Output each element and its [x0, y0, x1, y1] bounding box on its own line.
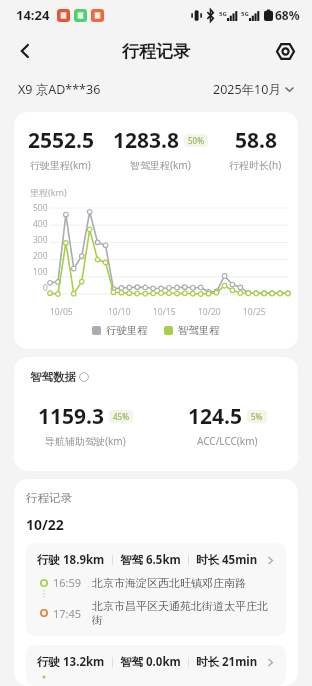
- staticText: 10/25: [243, 306, 266, 318]
- staticText: 行驶 18.9km: [37, 552, 105, 568]
- button[interactable]: X9 京AD***36: [18, 81, 101, 98]
- staticText: 10/10: [108, 306, 131, 318]
- staticText: 124.5: [188, 402, 242, 431]
- staticText: 16:59: [53, 575, 82, 590]
- staticText: 行驶里程(km): [30, 158, 91, 172]
- staticText: X9 京AD***36: [18, 81, 101, 98]
- staticText: 导航辅助驾驶(km): [45, 434, 126, 448]
- staticText: 智驾里程(km): [130, 158, 191, 172]
- staticText: 5%: [251, 411, 263, 422]
- staticText: 58.8: [235, 126, 277, 155]
- staticText: 行程记录: [122, 41, 190, 62]
- staticText: 68%: [275, 7, 300, 23]
- button[interactable]: 2025年10月: [213, 81, 294, 98]
- staticText: 2552.5: [28, 126, 94, 155]
- staticText: 300: [33, 234, 48, 246]
- staticText: 5G: [241, 10, 249, 18]
- staticText: 200: [33, 250, 48, 262]
- staticText: 400: [33, 218, 48, 230]
- staticText: 10/20: [198, 306, 221, 318]
- staticText: 里程(km): [30, 186, 67, 198]
- staticText: 智驾数据: [30, 370, 76, 384]
- staticText: 行驶里程: [106, 324, 148, 337]
- button[interactable]: 行驶 18.9km: [26, 543, 286, 636]
- staticText: ACC/LCC(km): [197, 434, 258, 448]
- staticText: 北京市昌平区天通苑北街道太平庄北街: [92, 599, 275, 627]
- staticText: 5G: [219, 10, 227, 18]
- staticText: 14:24: [16, 6, 50, 24]
- staticText: 北京市海淀区西北旺镇邓庄南路: [92, 576, 246, 590]
- staticText: 45%: [113, 411, 129, 422]
- button[interactable]: Settings: [266, 32, 304, 70]
- staticText: 10/15: [153, 306, 176, 318]
- staticText: 时长 21min: [196, 654, 258, 670]
- staticText: 行程时长(h): [229, 158, 282, 172]
- staticText: 100: [33, 266, 48, 278]
- staticText: 智驾 0.0km: [120, 654, 181, 670]
- staticText: 2025年10月: [213, 81, 281, 98]
- staticText: 1283.8: [113, 126, 179, 155]
- staticText: 0: [43, 282, 48, 294]
- staticText: 10/22: [26, 515, 64, 534]
- button[interactable]: 行驶 13.2km: [26, 645, 286, 686]
- staticText: 10/05: [50, 306, 73, 318]
- staticText: 智驾 6.5km: [120, 552, 181, 568]
- staticText: 500: [33, 202, 48, 214]
- button[interactable]: Back: [6, 32, 44, 70]
- staticText: 行程记录: [26, 491, 72, 505]
- staticText: 17:45: [53, 606, 82, 621]
- staticText: 智驾里程: [178, 324, 220, 337]
- staticText: 50%: [188, 135, 204, 146]
- staticText: 1159.3: [38, 402, 104, 431]
- staticText: 时长 45min: [196, 552, 258, 568]
- staticText: 行驶 13.2km: [37, 654, 105, 670]
